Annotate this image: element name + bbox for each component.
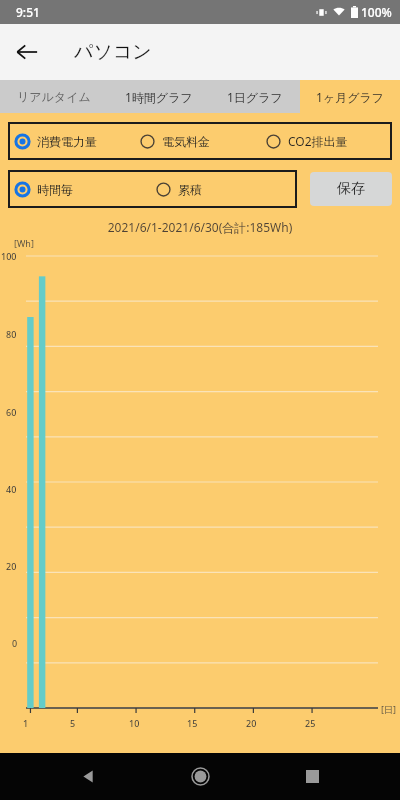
staticText: 60 [6, 406, 17, 418]
button[interactable]: 1時間グラフ [119, 80, 199, 113]
staticText: 100 [1, 250, 17, 262]
staticText: 9:51 [16, 4, 40, 20]
staticText: [日] [381, 703, 396, 715]
staticText: 時間毎 [37, 182, 73, 197]
button[interactable]: リアルタイム [11, 80, 97, 113]
button[interactable]: 保存 [310, 172, 392, 206]
button[interactable]: 消費電力量 [15, 122, 140, 160]
button[interactable]: CO2排出量 [266, 122, 392, 160]
button[interactable]: 累積 [156, 170, 297, 208]
staticText: 40 [6, 483, 17, 495]
staticText: [Wh] [14, 237, 34, 249]
button[interactable]: 1日グラフ [221, 80, 289, 113]
staticText: パソコン [74, 40, 152, 64]
button[interactable]: Back [7, 32, 47, 72]
staticText: 保存 [337, 180, 365, 198]
button[interactable]: Home [176, 753, 224, 800]
button[interactable]: 電気料金 [140, 122, 266, 160]
staticText: 累積 [178, 182, 202, 197]
staticText: 10 [129, 717, 140, 729]
staticText: 0 [12, 637, 18, 649]
staticText: 電気料金 [162, 134, 210, 149]
staticText: 25 [305, 717, 316, 729]
staticText: リアルタイム [17, 89, 91, 104]
staticText: 1時間グラフ [125, 89, 193, 105]
button[interactable]: Back [64, 753, 112, 800]
staticText: CO2排出量 [288, 133, 348, 149]
button[interactable]: 1ヶ月グラフ [300, 80, 400, 113]
staticText: 100% [361, 4, 392, 20]
staticText: 80 [6, 328, 17, 340]
staticText: 1 [23, 717, 29, 729]
button[interactable]: 時間毎 [15, 170, 156, 208]
staticText: 20 [6, 560, 17, 572]
staticText: 2021/6/1-2021/6/30(合計:185Wh) [0, 219, 400, 235]
staticText: 20 [246, 717, 257, 729]
staticText: 消費電力量 [37, 134, 97, 149]
staticText: 1ヶ月グラフ [316, 89, 384, 105]
staticText: 1日グラフ [227, 89, 283, 105]
button[interactable]: Recents [288, 753, 336, 800]
staticText: 5 [70, 717, 76, 729]
staticText: 15 [187, 717, 198, 729]
